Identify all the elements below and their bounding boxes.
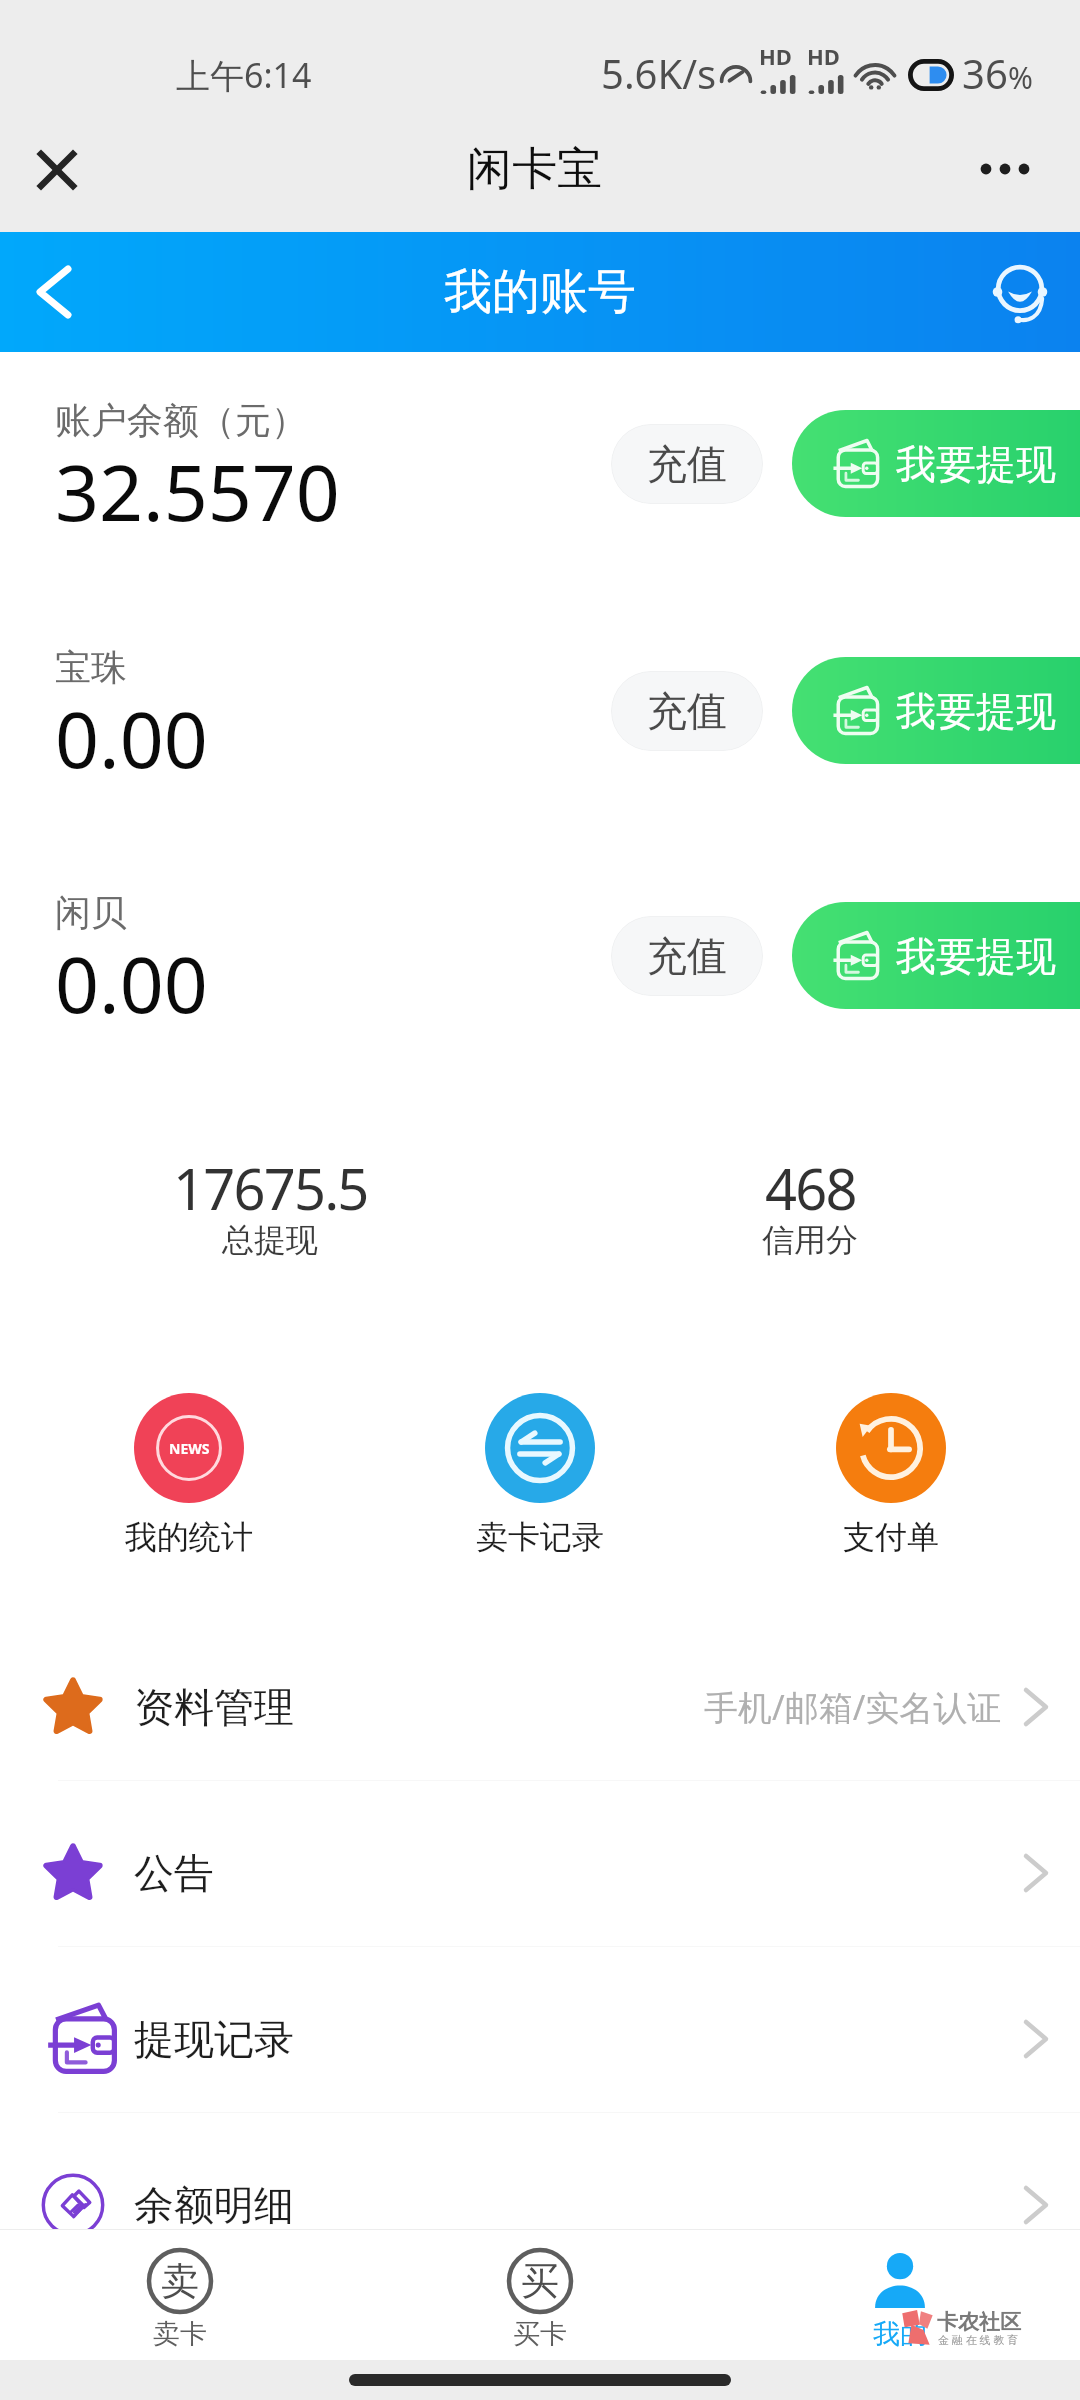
- button[interactable]: Close: [16, 136, 94, 214]
- staticText: 余额明细: [134, 2180, 294, 2230]
- staticText: 上午6:14: [176, 52, 312, 98]
- button[interactable]: 充值: [611, 671, 763, 751]
- staticText: 468: [765, 1150, 856, 1226]
- staticText: 充值: [647, 931, 727, 981]
- button[interactable]: 我要提现: [792, 657, 1080, 764]
- staticText: 我要提现: [896, 686, 1056, 736]
- staticText: 卖卡记录: [476, 1517, 604, 1557]
- button[interactable]: NEWS: [14, 1393, 364, 1557]
- button[interactable]: Customer service: [988, 260, 1052, 324]
- staticText: 卖: [161, 2257, 199, 2305]
- staticText: 账户余额（元）: [55, 398, 307, 443]
- staticText: 我的统计: [125, 1517, 253, 1557]
- staticText: 我要提现: [896, 439, 1056, 489]
- staticText: 资料管理: [134, 1682, 294, 1732]
- button[interactable]: 公告: [0, 1790, 1080, 1955]
- staticText: 17675.5: [173, 1150, 368, 1226]
- button[interactable]: 我的: [720, 2230, 1080, 2360]
- staticText: 金 融 在 线 教 育: [938, 2332, 1019, 2347]
- staticText: %: [1008, 57, 1033, 98]
- button[interactable]: 资料管理: [0, 1624, 1080, 1789]
- button[interactable]: 我要提现: [792, 902, 1080, 1009]
- button[interactable]: 支付单: [715, 1393, 1066, 1557]
- staticText: 手机/邮箱/实名认证: [704, 1684, 1002, 1730]
- staticText: 我的账号: [444, 262, 636, 322]
- button[interactable]: 我要提现: [792, 410, 1080, 517]
- staticText: 充值: [647, 686, 727, 736]
- staticText: 信用分: [762, 1220, 858, 1260]
- button[interactable]: 买: [360, 2230, 720, 2360]
- button[interactable]: 余额明细: [0, 2122, 1080, 2287]
- button[interactable]: Back: [14, 252, 94, 332]
- staticText: 卡农社区: [937, 2309, 1021, 2335]
- staticText: 我的: [873, 2317, 927, 2351]
- staticText: 0.00: [55, 931, 208, 1036]
- staticText: HD: [807, 41, 840, 71]
- staticText: 我要提现: [896, 931, 1056, 981]
- staticText: HD: [759, 41, 792, 71]
- button[interactable]: 充值: [611, 916, 763, 996]
- button[interactable]: 17675.5: [0, 1150, 540, 1266]
- staticText: 卖卡: [153, 2317, 207, 2351]
- staticText: NEWS: [169, 1439, 210, 1458]
- button[interactable]: 468: [540, 1150, 1080, 1266]
- button[interactable]: 提现记录: [0, 1956, 1080, 2121]
- staticText: 买卡: [513, 2317, 567, 2351]
- staticText: 买: [521, 2257, 559, 2305]
- button[interactable]: More options: [966, 144, 1044, 206]
- staticText: 5.6K/s: [601, 46, 717, 100]
- button[interactable]: 卖卡记录: [364, 1393, 715, 1557]
- staticText: 提现记录: [134, 2014, 294, 2064]
- staticText: 支付单: [843, 1517, 939, 1557]
- staticText: 充值: [647, 439, 727, 489]
- staticText: 32.5570: [55, 439, 340, 544]
- staticText: 宝珠: [55, 645, 127, 690]
- staticText: 公告: [134, 1848, 214, 1898]
- staticText: 闲贝: [55, 890, 127, 935]
- button[interactable]: 卖: [0, 2230, 360, 2360]
- staticText: 总提现: [222, 1220, 318, 1260]
- staticText: 闲卡宝: [467, 141, 602, 198]
- staticText: 0.00: [55, 686, 208, 791]
- staticText: 36: [962, 46, 1008, 100]
- button[interactable]: 充值: [611, 424, 763, 504]
